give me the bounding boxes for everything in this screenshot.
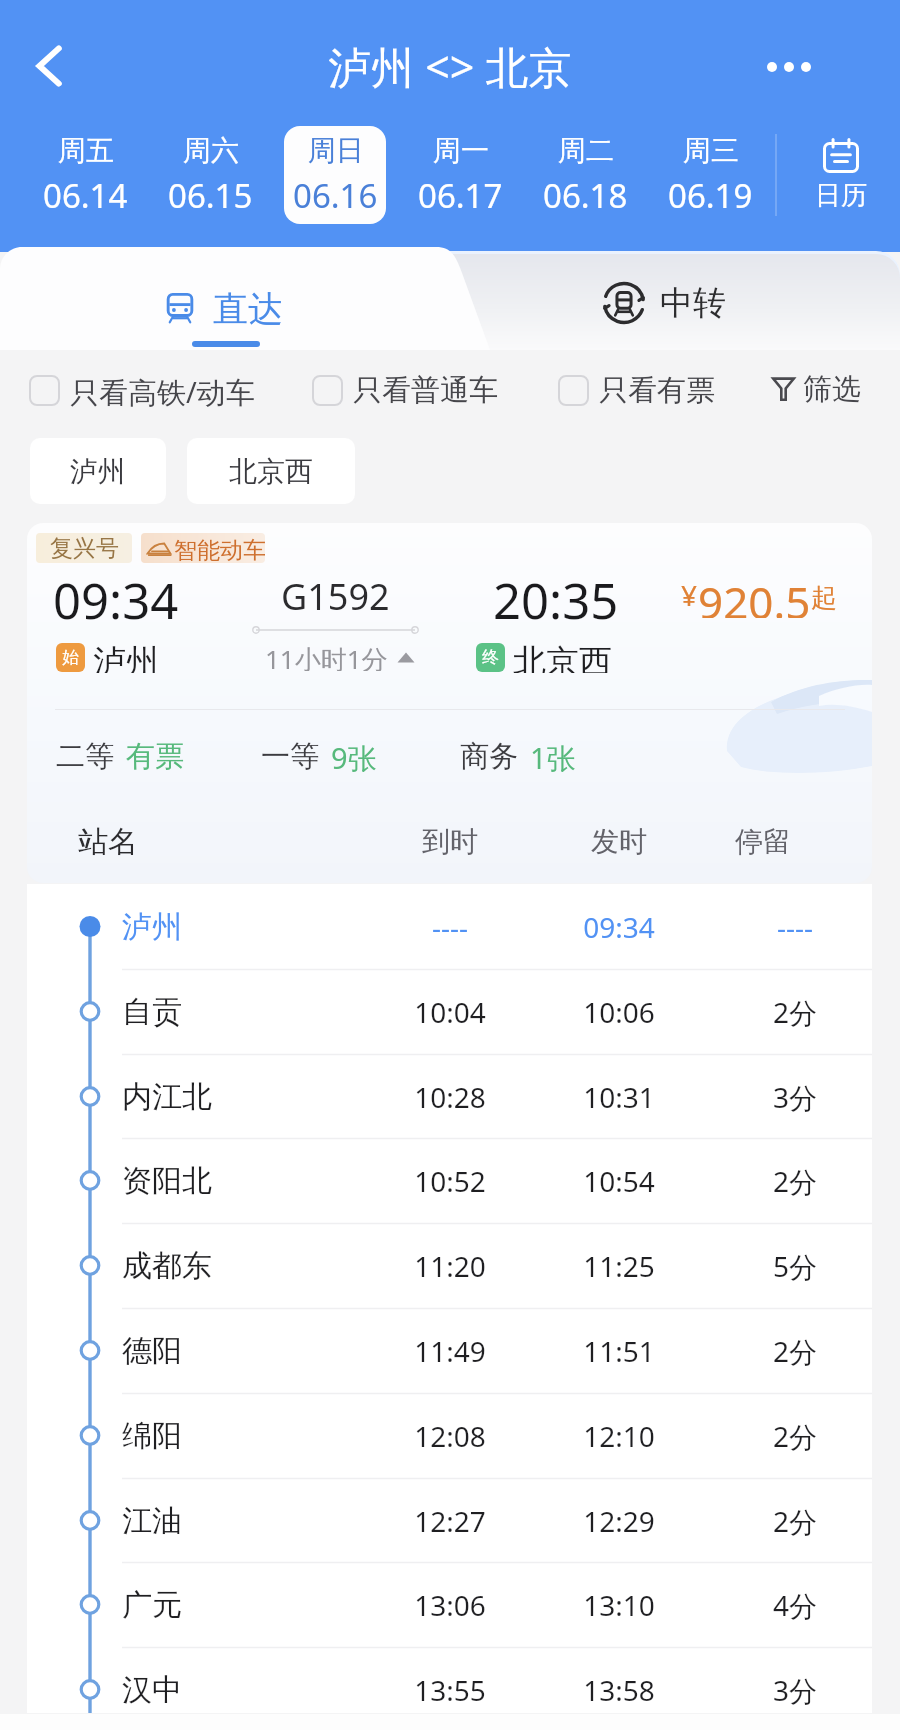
staticText: 10:31	[564, 1078, 674, 1116]
button[interactable]: 泸州	[30, 438, 166, 504]
staticText: 周二	[558, 133, 614, 168]
staticText: 智能动车	[174, 536, 265, 563]
staticText: 有票	[126, 738, 184, 772]
staticText: 发时	[564, 824, 674, 859]
staticText: 周五	[58, 133, 114, 168]
staticText: 12:10	[564, 1417, 674, 1455]
staticText: 成都东	[122, 1247, 212, 1285]
staticText: 只看有票	[599, 372, 715, 408]
staticText: 广元	[122, 1586, 182, 1624]
staticText: 06.17	[418, 173, 503, 218]
staticText: 绵阳	[122, 1417, 182, 1455]
staticText: ----	[740, 908, 850, 946]
button[interactable]: 自贡	[27, 969, 872, 1054]
staticText: 内江北	[122, 1078, 212, 1116]
staticText: 2分	[740, 1417, 850, 1455]
staticText: 11:25	[564, 1247, 674, 1285]
staticText: 2分	[740, 1332, 850, 1370]
staticText: 2分	[740, 1162, 850, 1200]
staticText: 泸州	[70, 454, 126, 489]
staticText: 10:52	[395, 1162, 505, 1200]
button[interactable]	[27, 523, 872, 883]
button[interactable]: 直达	[164, 287, 283, 329]
staticText: 09:34	[564, 908, 674, 946]
staticText: 06.14	[43, 173, 128, 218]
staticText: 复兴号	[50, 534, 119, 563]
button[interactable]: 绵阳	[27, 1393, 872, 1478]
staticText: 10:28	[395, 1078, 505, 1116]
button[interactable]: 中转	[602, 281, 726, 325]
staticText: 06.16	[293, 173, 378, 218]
button[interactable]: 北京西	[187, 438, 355, 504]
staticText: 10:54	[564, 1162, 674, 1200]
button[interactable]: 资阳北	[27, 1138, 872, 1223]
staticText: 日历	[815, 179, 867, 212]
button[interactable]: 只看高铁/动车	[29, 372, 255, 408]
staticText: 2分	[740, 993, 850, 1031]
button[interactable]: 周二	[534, 126, 636, 224]
button[interactable]: 汉中	[27, 1647, 872, 1730]
staticText: 江油	[122, 1502, 182, 1540]
staticText: 北京西	[229, 454, 313, 489]
staticText: 一等	[261, 738, 319, 772]
staticText: 5分	[740, 1247, 850, 1285]
staticText: 周日	[308, 133, 364, 168]
staticText: 周一	[433, 133, 489, 168]
button[interactable]	[0, 247, 900, 350]
staticText: 920.5	[698, 572, 811, 618]
button[interactable]: 泸州	[27, 884, 872, 969]
staticText: 二等	[56, 738, 114, 772]
staticText: 商务	[460, 738, 518, 772]
button[interactable]: 周日	[284, 126, 386, 224]
button[interactable]: 日历	[782, 122, 900, 228]
button[interactable]: 江油	[27, 1478, 872, 1563]
button[interactable]: 周六	[159, 126, 261, 224]
staticText: 泸州	[93, 641, 159, 673]
staticText: 13:10	[564, 1586, 674, 1624]
staticText: 2分	[740, 1502, 850, 1540]
staticText: 中转	[660, 282, 726, 324]
staticText: 只看高铁/动车	[70, 372, 255, 408]
button[interactable]: 周一	[409, 126, 511, 224]
staticText: 12:27	[395, 1502, 505, 1540]
staticText: 12:08	[395, 1417, 505, 1455]
button[interactable]: Back	[14, 30, 86, 102]
staticText: 起	[811, 582, 837, 615]
staticText: 北京西	[513, 641, 612, 673]
staticText: 终	[482, 647, 499, 668]
staticText: 周三	[683, 133, 739, 168]
staticText: 11小时1分	[265, 641, 388, 671]
button[interactable]: More options	[753, 31, 825, 103]
staticText: 06.18	[543, 173, 628, 218]
button[interactable]: 广元	[27, 1562, 872, 1647]
staticText: 1张	[530, 738, 576, 772]
button[interactable]: 德阳	[27, 1308, 872, 1393]
staticText: 3分	[740, 1078, 850, 1116]
staticText: 9张	[331, 738, 377, 772]
staticText: 4分	[740, 1586, 850, 1624]
button[interactable]: 周五	[34, 126, 136, 224]
staticText: 泸州	[122, 908, 182, 946]
staticText: G1592	[281, 572, 390, 621]
staticText: 10:04	[395, 993, 505, 1031]
staticText: 06.15	[168, 173, 253, 218]
staticText: 停留	[708, 824, 818, 859]
button[interactable]: 内江北	[27, 1054, 872, 1139]
staticText: 泸州 <> 北京	[328, 37, 572, 96]
staticText: 06.19	[668, 173, 753, 218]
button[interactable]: 只看有票	[558, 372, 715, 408]
staticText: 11:51	[564, 1332, 674, 1370]
button[interactable]: 周三	[659, 126, 761, 224]
staticText: 资阳北	[122, 1162, 212, 1200]
button[interactable]	[0, 251, 900, 350]
staticText: 筛选	[803, 371, 861, 408]
button[interactable]: 筛选	[772, 368, 861, 410]
staticText: 13:55	[395, 1671, 505, 1709]
staticText: ¥	[681, 576, 698, 614]
button[interactable]: 只看普通车	[312, 372, 498, 408]
staticText: 09:34	[53, 567, 179, 634]
staticText: 13:06	[395, 1586, 505, 1624]
staticText: 始	[62, 647, 79, 668]
button[interactable]: 成都东	[27, 1223, 872, 1308]
staticText: ----	[395, 908, 505, 946]
